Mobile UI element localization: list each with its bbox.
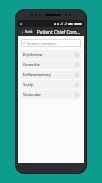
- staticText: Growths: [23, 62, 40, 68]
- button[interactable]: Information about Vesicular: [74, 92, 79, 97]
- button[interactable]: Exit: [20, 28, 34, 36]
- staticText: Patient Chief Com...: [37, 29, 81, 35]
- button[interactable]: Information about Inflammatory: [74, 72, 79, 77]
- staticText: Erythema: [23, 52, 43, 58]
- button[interactable]: Growths: [21, 60, 81, 69]
- button[interactable]: Vesicular: [21, 90, 81, 99]
- button[interactable]: Information about Growths: [74, 62, 79, 67]
- staticText: Vesicular: [23, 92, 42, 98]
- button[interactable]: Information about Scaly: [74, 82, 79, 87]
- staticText: Scaly: [23, 82, 34, 88]
- button[interactable]: Inflammatory: [21, 70, 81, 79]
- staticText: Search content...: [27, 41, 59, 46]
- staticText: Inflammatory: [23, 72, 51, 78]
- button[interactable]: Scaly: [21, 80, 81, 89]
- button[interactable]: Erythema: [21, 50, 81, 59]
- button[interactable]: Search content...: [21, 39, 81, 47]
- staticText: Exit: [25, 29, 33, 35]
- button[interactable]: Information about Erythema: [74, 52, 79, 57]
